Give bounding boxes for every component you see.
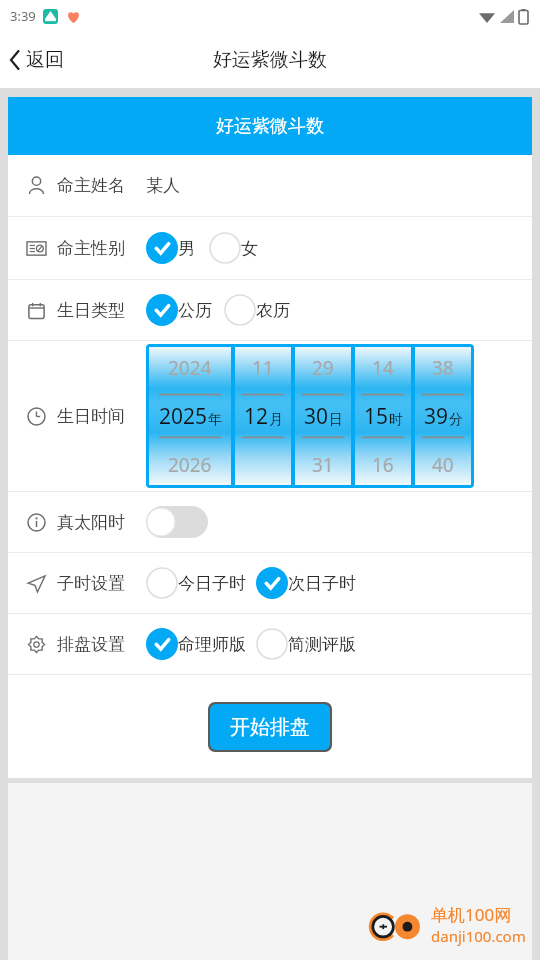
button[interactable]: 真太阳时开关 xyxy=(146,506,208,538)
staticText: 11 xyxy=(252,355,274,381)
staticText: 39 xyxy=(424,402,449,431)
staticText: 命主姓名 xyxy=(57,175,125,196)
button[interactable]: 今日子时 xyxy=(146,567,246,599)
staticText: 好运紫微斗数 xyxy=(213,48,327,72)
button[interactable]: 生日时间选择 xyxy=(149,347,471,485)
staticText: 命主性别 xyxy=(57,238,125,259)
button[interactable]: 返回 xyxy=(0,40,74,80)
staticText: 返回 xyxy=(26,48,64,72)
staticText: 公历 xyxy=(178,300,212,321)
staticText: 29 xyxy=(312,355,334,381)
staticText: 单机100网 xyxy=(431,903,512,926)
button[interactable]: 命理师版 xyxy=(146,628,246,660)
staticText: 子时设置 xyxy=(57,573,125,594)
staticText: 31 xyxy=(312,452,334,478)
staticText: 2025 xyxy=(159,402,208,431)
staticText: 40 xyxy=(432,452,454,478)
staticText: 生日类型 xyxy=(57,300,125,321)
staticText: 命理师版 xyxy=(178,634,246,655)
staticText: 2024 xyxy=(168,355,212,381)
staticText: 简测评版 xyxy=(288,634,356,655)
staticText: 女 xyxy=(241,238,258,259)
staticText: 38 xyxy=(432,355,454,381)
button[interactable]: 次日子时 xyxy=(256,567,356,599)
staticText: 15 xyxy=(364,402,389,431)
staticText: 开始排盘 xyxy=(230,715,310,740)
button[interactable]: 男 xyxy=(146,232,195,264)
staticText: 某人 xyxy=(146,175,180,196)
staticText: 男 xyxy=(178,238,195,259)
staticText: danji100.com xyxy=(431,926,526,946)
staticText: 生日时间 xyxy=(57,406,125,427)
staticText: 今日子时 xyxy=(178,573,246,594)
staticText: 真太阳时 xyxy=(57,512,125,533)
staticText: 16 xyxy=(372,452,394,478)
staticText: 时 xyxy=(389,411,403,429)
staticText: 月 xyxy=(269,411,283,429)
staticText: 好运紫微斗数 xyxy=(216,115,324,138)
button[interactable]: 公历 xyxy=(146,294,212,326)
staticText: 分 xyxy=(449,411,463,429)
button[interactable]: 女 xyxy=(209,232,258,264)
staticText: 12 xyxy=(244,402,269,431)
staticText: 30 xyxy=(304,402,329,431)
staticText: 年 xyxy=(208,411,222,429)
staticText: 日 xyxy=(329,411,343,429)
staticText: 2026 xyxy=(168,452,212,478)
staticText: 农历 xyxy=(256,300,290,321)
staticText: 14 xyxy=(372,355,394,381)
staticText: 次日子时 xyxy=(288,573,356,594)
staticText: 3:39 xyxy=(10,7,36,25)
button[interactable]: 农历 xyxy=(224,294,290,326)
button[interactable]: 开始排盘 xyxy=(210,704,330,750)
button[interactable]: 简测评版 xyxy=(256,628,356,660)
staticText: 排盘设置 xyxy=(57,634,125,655)
